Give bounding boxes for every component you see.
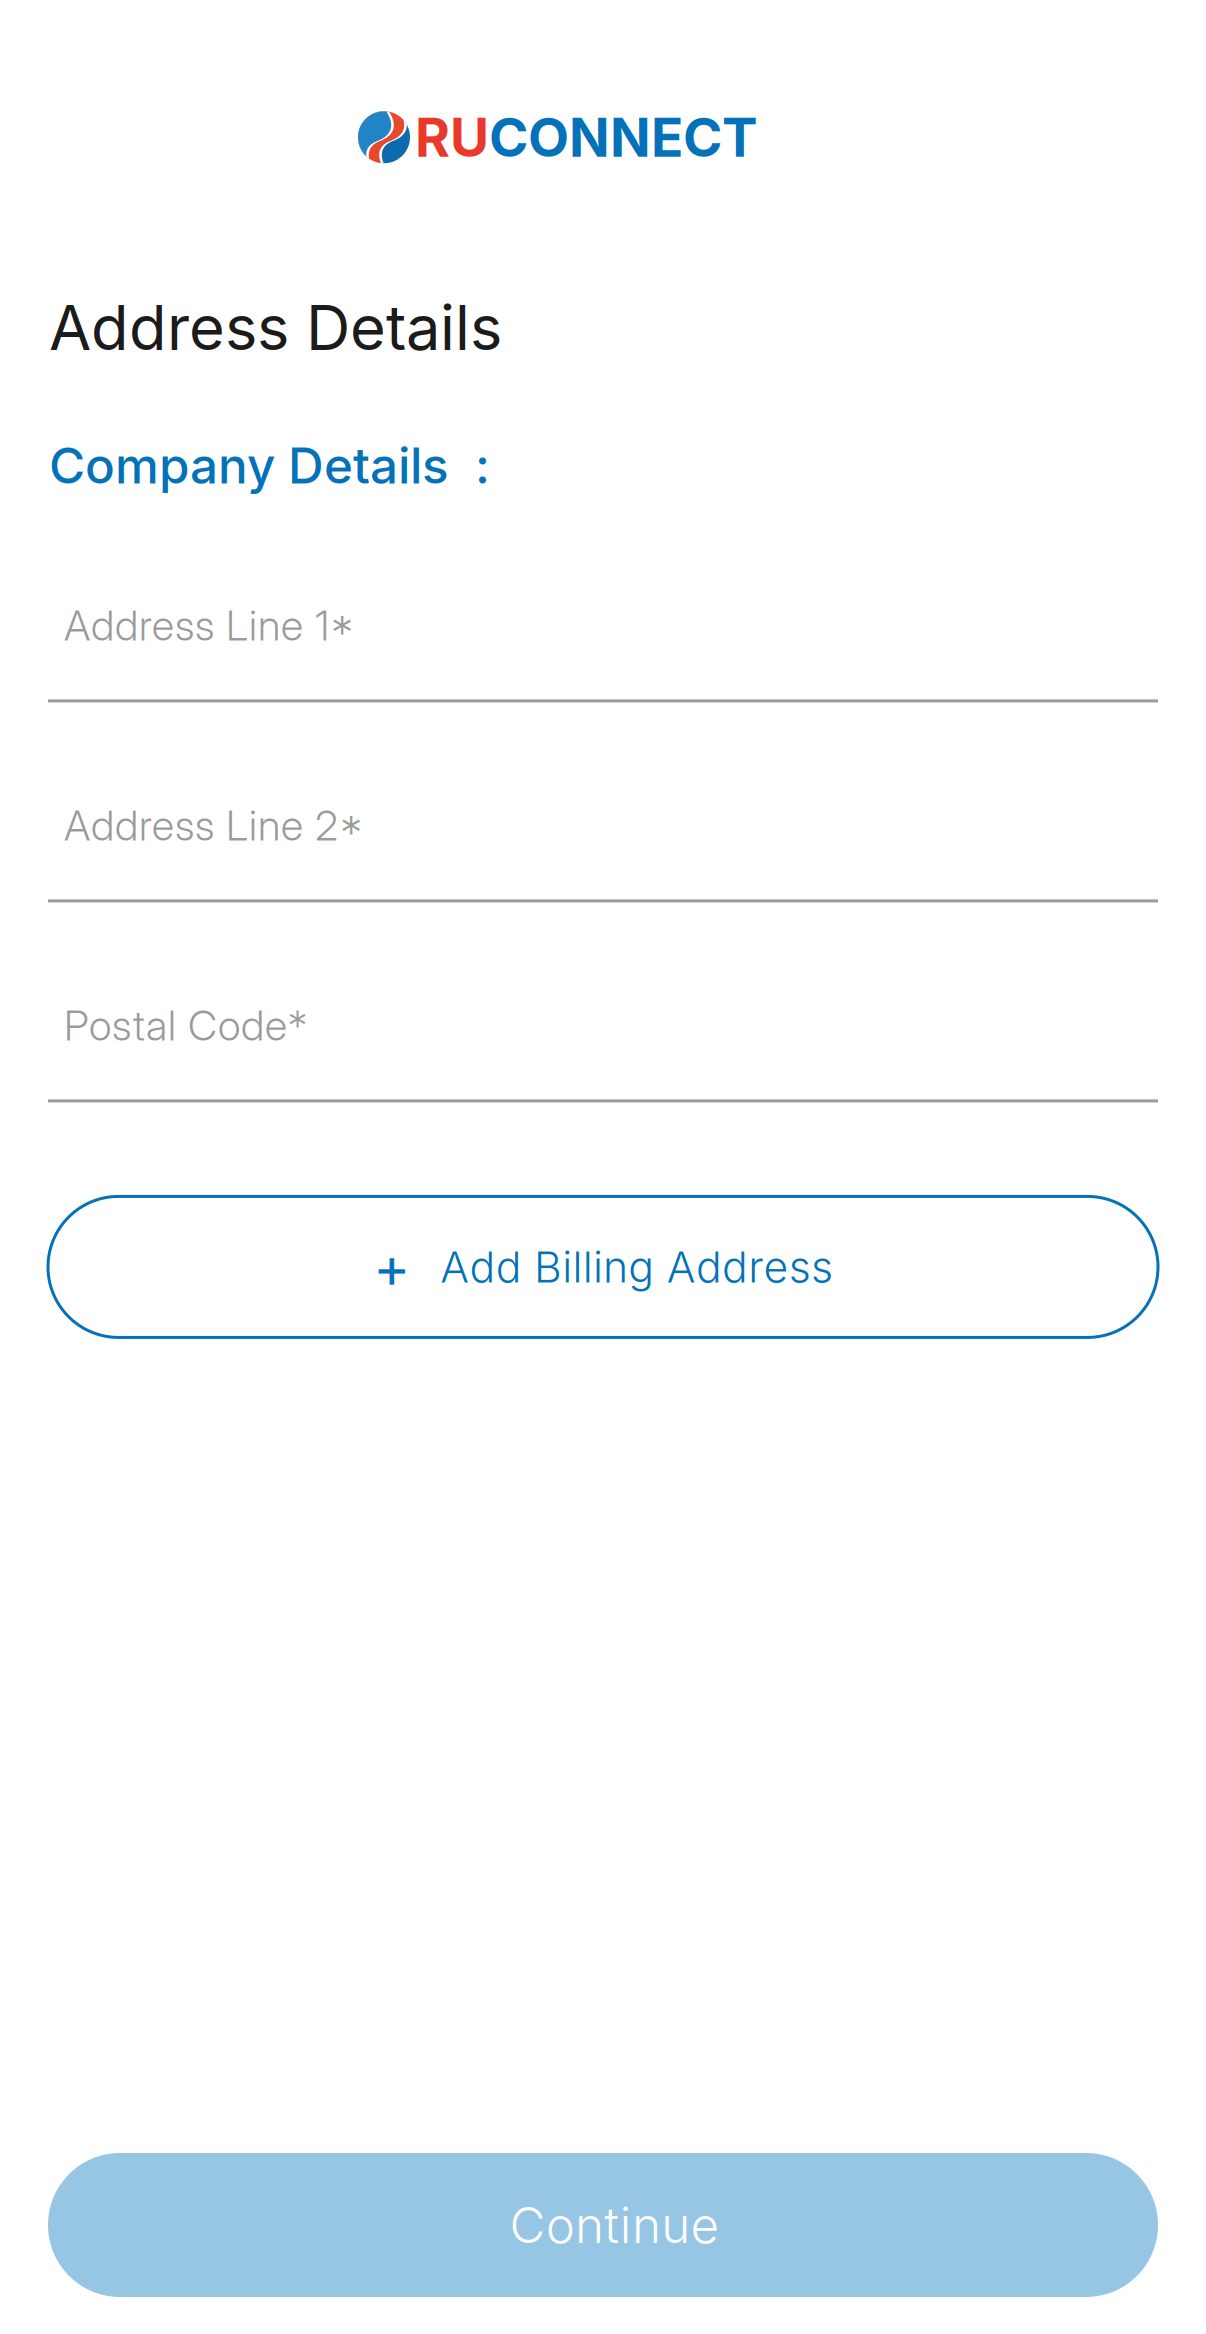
- button[interactable]: Address Line 2*: [48, 792, 1158, 902]
- staticText: Company Details :: [49, 436, 490, 495]
- staticText: Address Details: [49, 290, 502, 365]
- button[interactable]: +: [48, 1196, 1158, 1337]
- staticText: CONNECT: [489, 105, 758, 169]
- staticText: Postal Code*: [64, 1000, 307, 1050]
- staticText: RU: [415, 105, 489, 169]
- staticText: Add Billing Address: [440, 1241, 833, 1293]
- staticText: Address Line 1*: [64, 600, 354, 650]
- staticText: +: [373, 1233, 410, 1301]
- button[interactable]: Postal Code*: [48, 992, 1158, 1102]
- staticText: Continue: [509, 2195, 720, 2255]
- button[interactable]: Address Line 1*: [48, 592, 1158, 702]
- staticText: Address Line 2*: [64, 800, 363, 850]
- button[interactable]: Continue: [48, 2153, 1158, 2297]
